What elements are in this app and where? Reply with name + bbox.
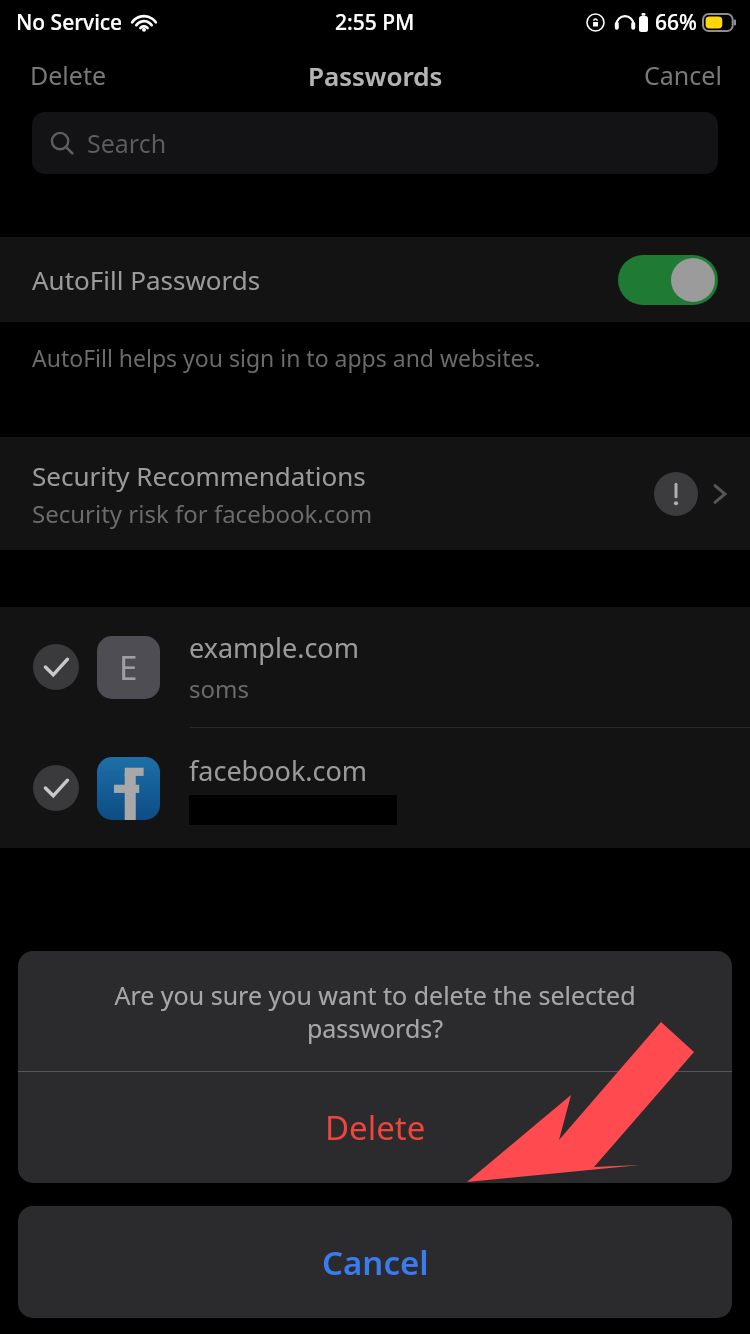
staticText: Cancel bbox=[322, 1240, 429, 1285]
staticText: E bbox=[119, 645, 138, 690]
button[interactable]: Cancel bbox=[18, 1206, 732, 1318]
button[interactable]: Selected bbox=[0, 728, 750, 848]
staticText: No Service bbox=[16, 8, 123, 37]
staticText: facebook.com bbox=[189, 752, 368, 789]
other: AutoFill Passwords toggle, on bbox=[618, 255, 718, 305]
other: Selected bbox=[33, 765, 79, 811]
staticText: example.com bbox=[189, 629, 359, 666]
button[interactable]: AutoFill Passwords bbox=[0, 237, 750, 322]
button[interactable]: Cancel bbox=[616, 48, 750, 102]
staticText: AutoFill helps you sign in to apps and w… bbox=[32, 342, 541, 373]
button[interactable]: Search bbox=[32, 112, 718, 174]
button[interactable]: Delete bbox=[0, 48, 137, 102]
staticText: 66% bbox=[655, 8, 697, 37]
button[interactable]: Selected bbox=[0, 607, 750, 727]
staticText: Security Recommendations bbox=[32, 458, 366, 493]
staticText: Cancel bbox=[644, 58, 722, 92]
staticText: 2:55 PM bbox=[335, 8, 415, 37]
staticText: Security risk for facebook.com bbox=[32, 497, 373, 530]
staticText: Search bbox=[87, 126, 167, 160]
staticText: AutoFill Passwords bbox=[32, 262, 618, 297]
staticText: soms bbox=[189, 672, 249, 705]
staticText: Delete bbox=[325, 1105, 426, 1150]
staticText: Are you sure you want to delete the sele… bbox=[58, 978, 692, 1045]
button[interactable]: Delete bbox=[18, 1072, 732, 1183]
other: Selected bbox=[33, 644, 79, 690]
staticText: Delete bbox=[30, 58, 107, 92]
button[interactable]: Security Recommendations bbox=[0, 437, 750, 550]
staticText: Passwords bbox=[308, 58, 443, 93]
